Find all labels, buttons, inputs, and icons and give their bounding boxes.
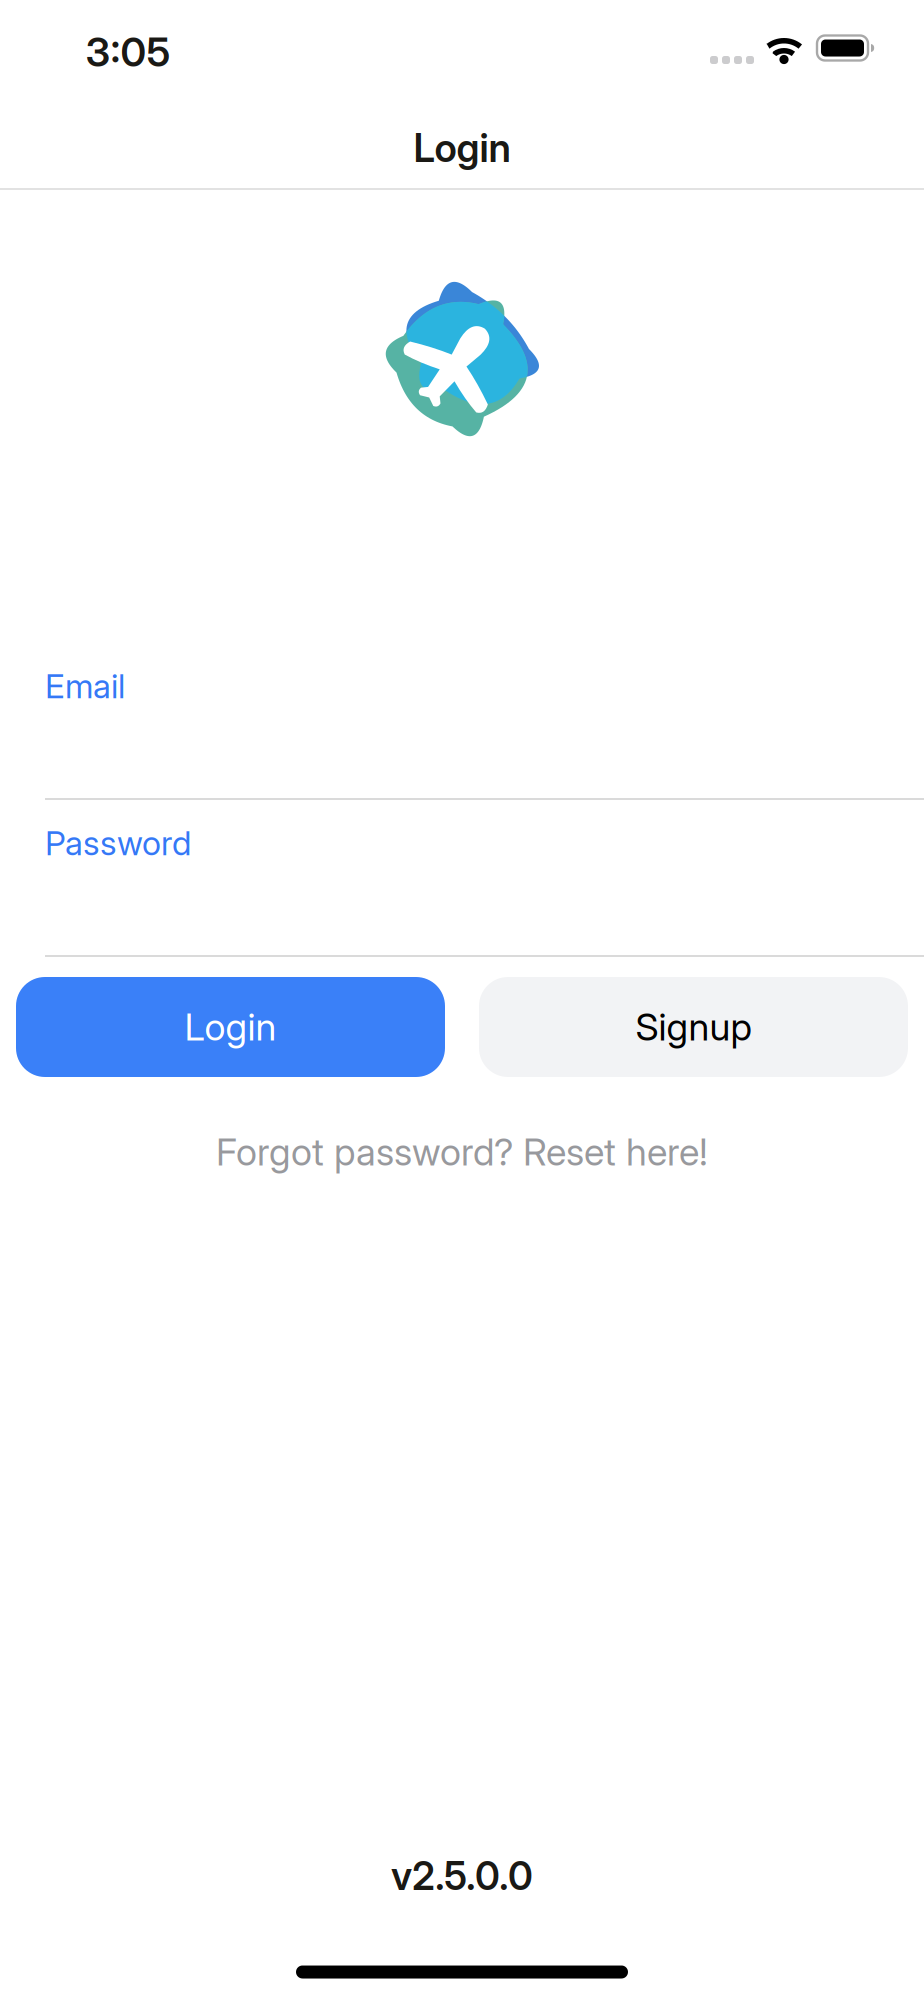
staticText: Email bbox=[45, 666, 125, 706]
button[interactable]: Password bbox=[0, 811, 924, 956]
staticText: Password bbox=[45, 823, 191, 863]
button[interactable]: Signup bbox=[479, 977, 908, 1077]
staticText: Login bbox=[413, 125, 510, 171]
staticText: 3:05 bbox=[85, 28, 170, 76]
button[interactable]: Login bbox=[16, 977, 445, 1077]
staticText: Signup bbox=[635, 1005, 751, 1049]
button[interactable]: Email bbox=[0, 654, 924, 799]
staticText: Forgot password? Reset here! bbox=[216, 1130, 708, 1174]
button[interactable]: Forgot password? Reset here! bbox=[216, 1130, 708, 1174]
staticText: v2.5.0.0 bbox=[391, 1853, 533, 1899]
staticText: Login bbox=[184, 1005, 276, 1049]
